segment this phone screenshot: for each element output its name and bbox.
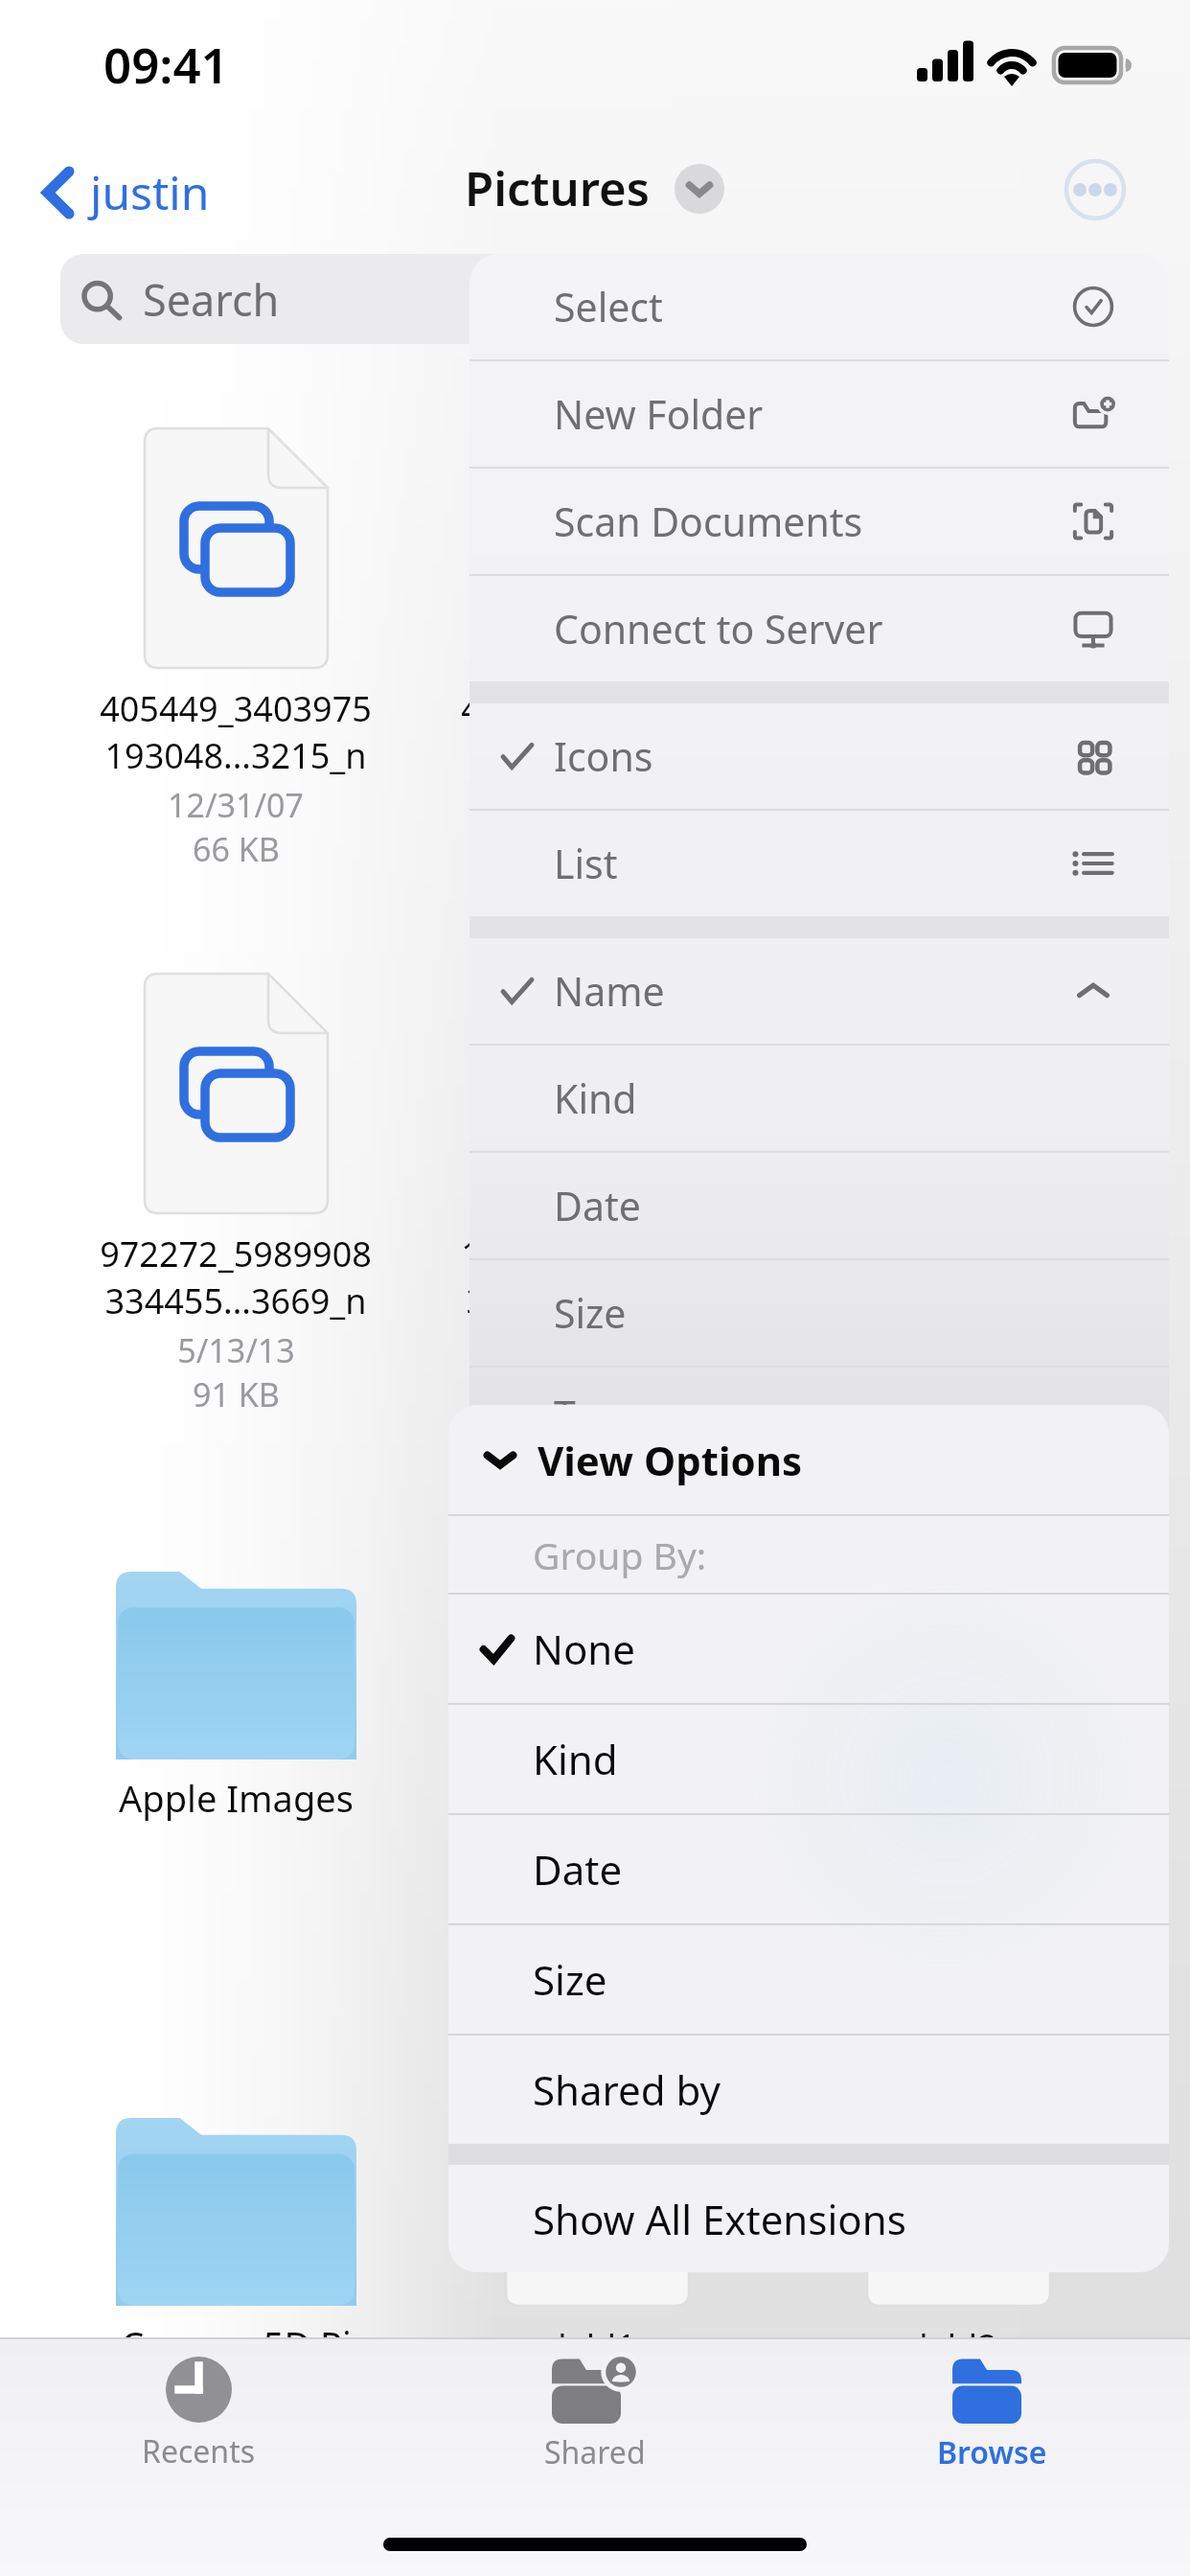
staticText: Scan Documents (554, 494, 863, 548)
staticText: 12/31/07 (529, 783, 665, 827)
button[interactable]: Shared by (448, 2035, 1169, 2144)
staticText: 405449_3403975 (100, 685, 372, 732)
staticText: Search (143, 270, 280, 329)
staticText: 91 KB (554, 1372, 641, 1416)
button[interactable]: labl2 (786, 2066, 1131, 2509)
button[interactable]: Folder options (675, 164, 724, 214)
staticText: Date (554, 1179, 641, 1232)
button[interactable]: 309481_1038284 (786, 974, 1131, 1416)
button[interactable]: List (469, 811, 1169, 916)
staticText: 91 KB (193, 1372, 280, 1416)
staticText: Show All Extensions (533, 2192, 906, 2246)
button[interactable]: labl1 (424, 2066, 769, 2509)
staticText: 193048...3215_n (827, 732, 1089, 779)
button[interactable]: View Options (448, 1405, 1169, 1514)
staticText: Group By: (533, 1529, 707, 1580)
staticText: Select (554, 280, 663, 333)
staticText: Pictures (465, 156, 650, 220)
button[interactable]: Icons (469, 703, 1169, 809)
staticText: Tags (554, 1388, 638, 1441)
staticText: labl1 (558, 2323, 636, 2370)
staticText: 972272_5989908 (100, 1230, 372, 1277)
staticText: 193048...3215_n (104, 732, 367, 779)
staticText: Name (554, 964, 665, 1018)
staticText: List (554, 837, 618, 890)
staticText: Kind (533, 1732, 618, 1786)
button[interactable]: Recents (0, 2339, 397, 2472)
button[interactable]: 405449_3403975 (424, 428, 769, 871)
staticText: 5/13/13 (538, 1328, 656, 1372)
button[interactable]: Kind (469, 1046, 1169, 1151)
staticText: Icons (554, 729, 653, 783)
staticText: 405449_3403975 (461, 685, 733, 732)
button[interactable]: Apple Images (63, 1571, 408, 1823)
staticText: 12/31/07 (890, 783, 1026, 827)
staticText: 109342_5284712 (461, 1230, 733, 1277)
button[interactable]: 405449_3403975 (786, 428, 1131, 871)
button[interactable]: Backgrounds (424, 1571, 769, 1823)
button[interactable]: Shared (397, 2339, 793, 2473)
staticText: 193048...3215_n (466, 732, 728, 779)
staticText: View Options (538, 1433, 803, 1487)
staticText: 91 KB (915, 1372, 1002, 1416)
button[interactable]: Search (60, 254, 789, 344)
staticText: 66 KB (193, 827, 280, 871)
button[interactable]: Kind (448, 1705, 1169, 1813)
staticText: 12/31/07 (168, 783, 304, 827)
staticText: 334455...3669_n (104, 1277, 367, 1324)
staticText: labl2 (919, 2323, 997, 2370)
staticText: 334455...3669_n (466, 1277, 728, 1324)
staticText: 09:41 (103, 31, 229, 97)
button[interactable]: 109342_5284712 (424, 974, 769, 1416)
staticText: 66 KB (554, 827, 641, 871)
button[interactable]: New Folder (469, 361, 1169, 467)
button[interactable]: Scan Documents (469, 469, 1169, 574)
button[interactable]: Select (469, 254, 1169, 359)
button[interactable]: Date (448, 1815, 1169, 1923)
staticText: New Folder (554, 387, 764, 441)
staticText: Recents (142, 2430, 256, 2472)
button[interactable]: 405449_3403975 (63, 428, 408, 871)
button[interactable]: Camera 5D Pi (63, 2117, 408, 2369)
staticText: None (533, 1621, 635, 1676)
button[interactable]: None (448, 1595, 1169, 1703)
staticText: Apple Images (119, 1773, 354, 1823)
staticText: Date (533, 1842, 623, 1897)
staticText: Size (554, 1286, 627, 1340)
staticText: Browse (937, 2431, 1047, 2473)
button[interactable]: Bird Photos (786, 1571, 1131, 1823)
button[interactable]: justin (33, 153, 216, 231)
staticText: Shared by (533, 2062, 721, 2117)
staticText: 405449_3403975 (822, 685, 1094, 732)
button[interactable]: Connect to Server (469, 576, 1169, 681)
staticText: Connect to Server (554, 602, 883, 655)
staticText: Shared (544, 2431, 646, 2473)
staticText: 5/13/13 (177, 1328, 295, 1372)
staticText: Kind (554, 1071, 637, 1125)
staticText: justin (90, 161, 210, 223)
button[interactable]: Size (448, 1925, 1169, 2034)
button[interactable]: Name (469, 938, 1169, 1044)
button[interactable]: 972272_5989908 (63, 974, 408, 1416)
button[interactable]: Show All Extensions (448, 2165, 1169, 2272)
button[interactable]: Browse (793, 2339, 1190, 2473)
staticText: Backgrounds (485, 1773, 710, 1823)
staticText: Bird Photos (858, 1773, 1058, 1823)
staticText: Size (533, 1952, 607, 2007)
staticText: Camera 5D Pi (121, 2319, 352, 2369)
button[interactable]: Size (469, 1260, 1169, 1366)
button[interactable]: Tags (469, 1368, 1169, 1461)
button[interactable]: Date (469, 1153, 1169, 1258)
button[interactable]: More (1064, 159, 1126, 220)
